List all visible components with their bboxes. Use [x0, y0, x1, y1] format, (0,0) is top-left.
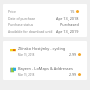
staticText: Mar 15, 2018 [18, 73, 35, 77]
staticText: 2.99 [69, 72, 77, 77]
staticText: Purchase status [8, 22, 34, 27]
staticText: Available for download until [8, 29, 53, 34]
button[interactable]: Bayern - LoMaps & Addresses [3, 61, 87, 80]
staticText: Date of purchase [8, 16, 36, 21]
staticText: Purchased [60, 22, 79, 27]
staticText: 2.99 [69, 52, 77, 57]
button[interactable]: Zlínsko Hostýnky - cycling [3, 41, 87, 61]
staticText: Apr 13, 2019 [56, 29, 79, 34]
staticText: Bayern - LoMaps & Addresses [18, 66, 73, 71]
staticText: Apr 13, 2018 [56, 16, 79, 21]
staticText: Zlínsko Hostýnky - cycling [18, 46, 66, 51]
staticText: Mar 15, 2018 [18, 53, 35, 57]
staticText: Price [8, 9, 16, 14]
staticText: 15 [70, 9, 75, 14]
